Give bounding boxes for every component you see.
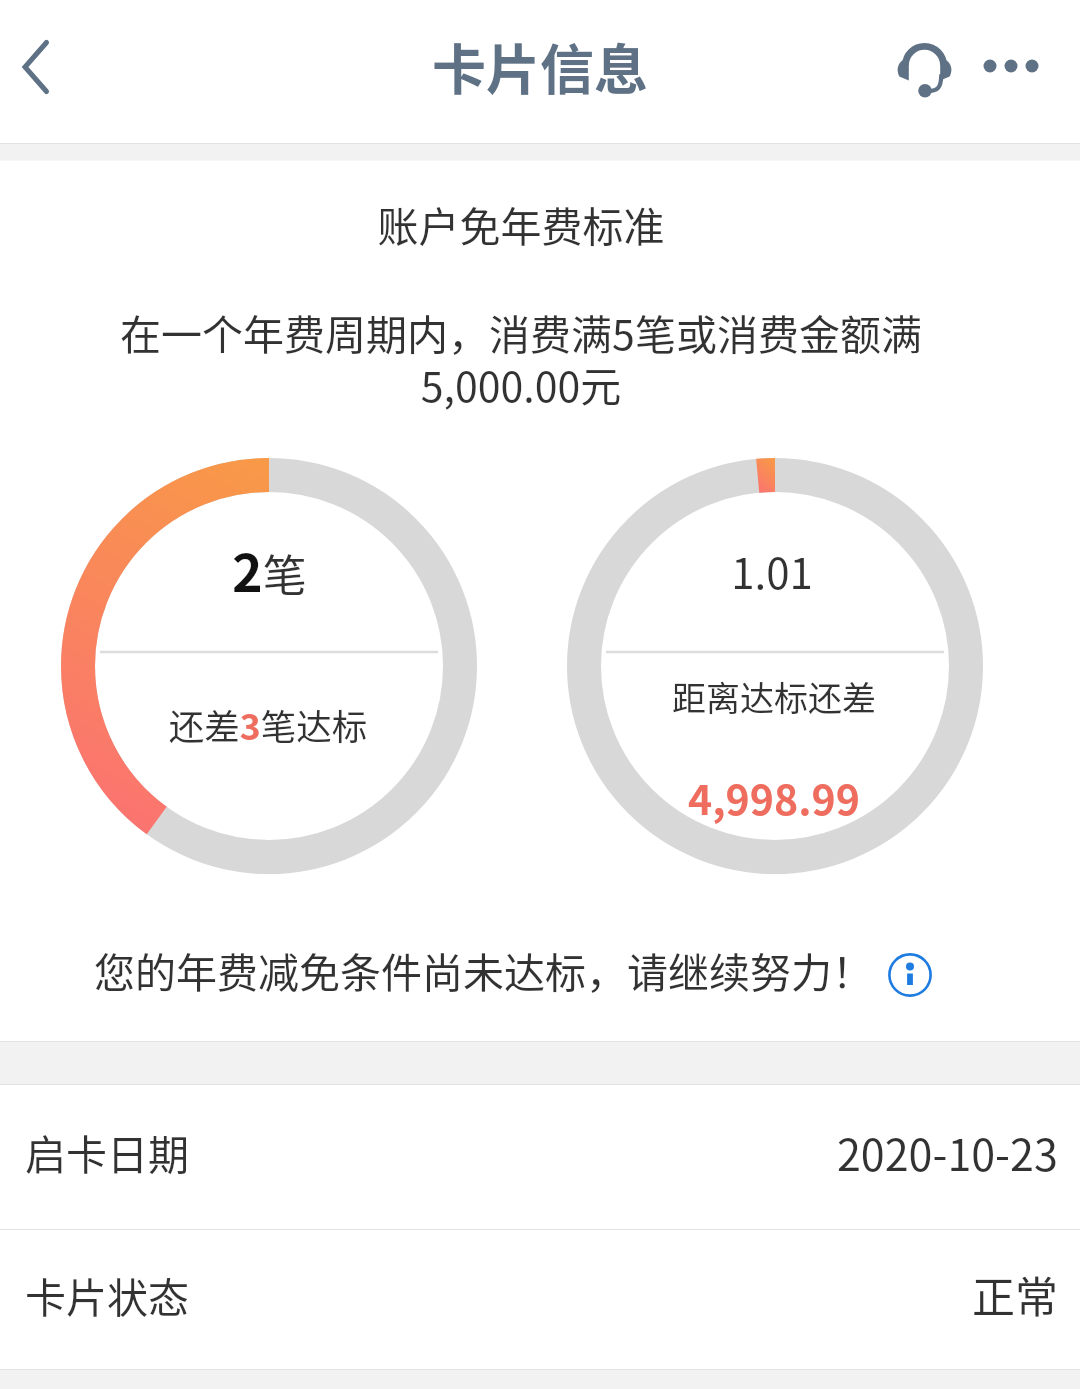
staticText: 在一个年费周期内，消费满5笔或消费金额满5,000.00元: [56, 302, 986, 414]
staticText: 卡片信息: [432, 27, 648, 105]
staticText: 2020-10-23: [837, 1121, 1058, 1183]
button[interactable]: More options: [964, 31, 1060, 103]
button[interactable]: 卡片状态: [0, 1230, 1080, 1369]
staticText: 2笔: [232, 532, 307, 607]
staticText: 正常: [972, 1263, 1058, 1325]
staticText: 4,998.99: [566, 767, 982, 826]
button[interactable]: 启卡日期: [0, 1085, 1080, 1229]
button[interactable]: Back: [0, 17, 72, 127]
staticText: 卡片状态: [25, 1265, 189, 1324]
staticText: 距离达标还差: [566, 672, 982, 721]
staticText: 您的年费减免条件尚未达标，请继续努力！: [94, 940, 873, 999]
button[interactable]: More information: [886, 951, 934, 999]
staticText: 1.01: [564, 540, 980, 601]
staticText: 启卡日期: [25, 1122, 189, 1181]
staticText: 还差3笔达标: [60, 699, 476, 750]
staticText: 账户免年费标准: [0, 194, 1061, 253]
button[interactable]: Customer service: [888, 34, 960, 106]
